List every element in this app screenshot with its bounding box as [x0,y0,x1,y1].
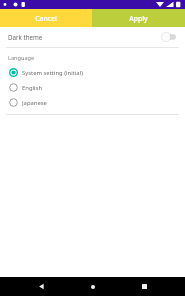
button[interactable]: Apply [92,9,185,27]
staticText: Japanese [22,99,47,107]
button[interactable]: Japanese [0,95,185,110]
staticText: System setting (initial) [22,69,83,77]
staticText: English [22,84,43,92]
button[interactable]: System setting (initial) [0,65,185,80]
button[interactable]: English [0,80,185,95]
button[interactable]: Recent apps [134,277,154,296]
staticText: Language [8,54,35,62]
button[interactable]: Dark theme [0,27,185,47]
button[interactable]: Home [83,277,103,296]
button[interactable]: Back [31,277,51,296]
staticText: Dark theme [8,33,43,41]
button[interactable]: Cancel [0,9,92,27]
staticText: Cancel [35,14,57,23]
staticText: Apply [129,14,148,23]
